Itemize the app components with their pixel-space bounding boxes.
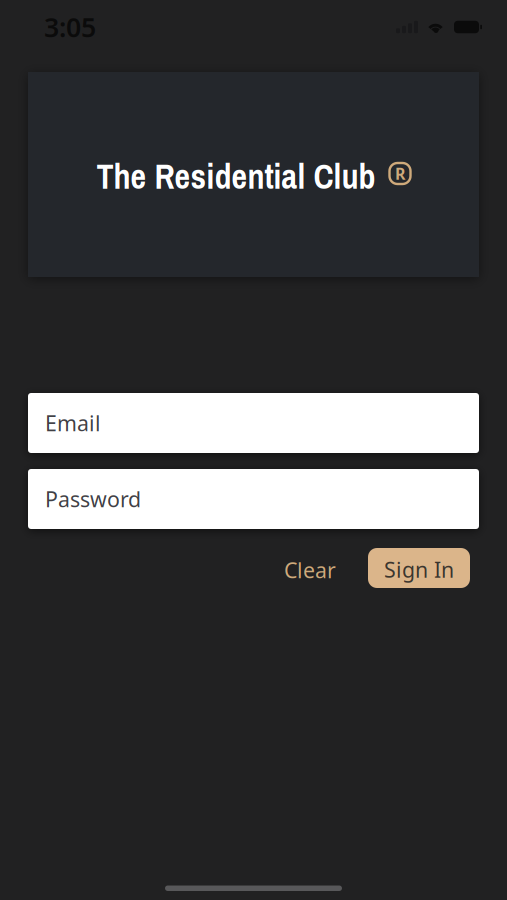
button[interactable]: Sign In xyxy=(368,548,470,588)
staticText: The Residential Club xyxy=(96,153,375,199)
staticText: R xyxy=(395,163,405,184)
button[interactable]: Clear xyxy=(284,554,336,582)
textField[interactable]: Email xyxy=(28,393,479,453)
textField[interactable]: Password xyxy=(28,469,479,529)
staticText: Email xyxy=(45,409,101,437)
staticText: Password xyxy=(45,485,141,513)
staticText: Clear xyxy=(284,556,336,584)
staticText: Sign In xyxy=(384,555,454,584)
staticText: 3:05 xyxy=(44,9,96,45)
